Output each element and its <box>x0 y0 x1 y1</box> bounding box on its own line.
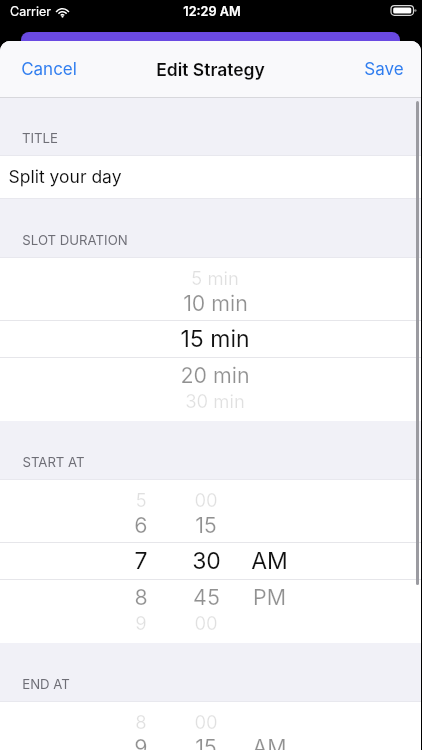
staticText: TITLE <box>22 130 58 146</box>
button[interactable]: 8 <box>0 701 421 750</box>
staticText: Edit Strategy <box>156 59 265 80</box>
staticText: 5 <box>135 489 147 511</box>
staticText: 10 min <box>183 290 248 316</box>
staticText: 00 <box>194 489 218 511</box>
staticText: 30 <box>192 547 221 575</box>
staticText: 6 <box>134 512 148 538</box>
staticText: END AT <box>22 676 70 692</box>
staticText: 7 <box>134 547 148 575</box>
staticText: PM <box>253 584 286 610</box>
button[interactable]: 5 min <box>0 257 421 421</box>
staticText: 00 <box>194 612 218 634</box>
staticText: 8 <box>134 584 148 610</box>
staticText: 15 min <box>180 325 250 353</box>
button[interactable]: Cancel <box>0 47 93 92</box>
staticText: 5 min <box>191 267 239 289</box>
staticText: 20 min <box>180 362 250 388</box>
staticText: Save <box>364 59 404 80</box>
staticText: START AT <box>22 454 85 470</box>
staticText: 9 <box>134 734 148 750</box>
other: Wi-Fi <box>55 7 70 17</box>
button[interactable]: Split your day <box>0 155 421 199</box>
button[interactable]: Save <box>348 47 421 92</box>
staticText: 15 <box>195 734 217 750</box>
staticText: AM <box>252 734 287 750</box>
staticText: AM <box>251 547 288 575</box>
staticText: Carrier <box>10 4 51 19</box>
staticText: 8 <box>135 711 147 733</box>
staticText: 9 <box>135 612 147 634</box>
staticText: Cancel <box>21 59 77 80</box>
other: Battery full <box>391 5 416 16</box>
staticText: 30 min <box>185 390 245 412</box>
button[interactable]: 5 <box>0 479 421 643</box>
staticText: SLOT DURATION <box>22 232 128 248</box>
staticText: 45 <box>193 584 220 610</box>
staticText: Split your day <box>8 166 122 187</box>
staticText: 15 <box>195 512 217 538</box>
staticText: 00 <box>194 711 218 733</box>
staticText: 12:29 AM <box>183 4 241 19</box>
